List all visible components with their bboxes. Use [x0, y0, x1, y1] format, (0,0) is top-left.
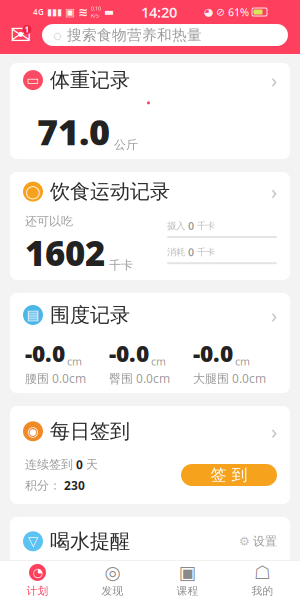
staticText: 千卡 [197, 220, 215, 232]
staticText: 臀围 0.0cm [109, 370, 170, 386]
button[interactable]: ⚙ [239, 534, 277, 549]
staticText: › [271, 302, 277, 328]
staticText: 围度记录 [50, 303, 130, 327]
staticText: 饮食运动记录 [50, 179, 170, 204]
staticText: ✉ [10, 21, 31, 49]
staticText: 4G [33, 7, 44, 17]
staticText: 体重记录 [50, 68, 130, 92]
staticText: ▬ [104, 6, 114, 18]
button[interactable]: ◉ [23, 418, 277, 445]
staticText: 计划 [26, 584, 48, 597]
button[interactable]: ▣ [150, 558, 225, 600]
staticText: › [271, 67, 277, 93]
button[interactable]: ◔ [0, 558, 75, 600]
staticText: 0 [76, 457, 83, 472]
staticText: ▣ [178, 562, 196, 583]
staticText: ▮▮▮ [47, 7, 62, 17]
staticText: 连续签到 [25, 457, 73, 472]
button[interactable]: ☖ [225, 558, 300, 600]
button[interactable]: ◯ [10, 172, 290, 280]
staticText: 还可以吃 [25, 214, 73, 229]
staticText: 积分： [25, 478, 61, 493]
button[interactable]: ◌ [42, 24, 288, 46]
staticText: 消耗 [167, 246, 185, 258]
staticText: ≋ [78, 5, 88, 19]
staticText: 0 [188, 219, 194, 233]
staticText: 发现 [101, 584, 123, 597]
staticText: 喝水提醒 [50, 529, 130, 554]
button[interactable]: 签 到 [181, 464, 277, 486]
staticText: 腰围 0.0cm [25, 370, 86, 386]
staticText: › [271, 178, 277, 205]
staticText: 230 [64, 477, 85, 493]
staticText: ◕ [204, 6, 213, 18]
staticText: 14:20 [141, 2, 177, 22]
staticText: ⊘ [216, 6, 225, 18]
staticText: -0.0 [193, 338, 233, 368]
staticText: -0.0 [25, 338, 65, 368]
staticText: 61% [228, 5, 249, 19]
staticText: 公斤 [114, 137, 138, 152]
staticText: ◯ [25, 184, 40, 199]
staticText: 签 到 [210, 465, 247, 485]
staticText: 天 [86, 457, 98, 472]
staticText: › [271, 418, 277, 445]
staticText: ◉ [27, 424, 39, 439]
staticText: 0 [188, 245, 194, 259]
staticText: cm [151, 354, 166, 368]
staticText: 每日签到 [50, 419, 130, 444]
staticText: ◎ [104, 562, 120, 583]
staticText: 1 [24, 24, 29, 35]
staticText: ▭ [26, 72, 39, 88]
staticText: 摄入 [167, 220, 185, 232]
staticText: 71.0 [37, 107, 110, 155]
staticText: 千卡 [109, 258, 133, 273]
staticText: 搜索食物营养和热量 [67, 26, 202, 44]
staticText: ▤ [26, 307, 39, 322]
staticText: 设置 [253, 534, 277, 549]
staticText: cm [235, 354, 250, 368]
staticText: ☖ [254, 562, 271, 583]
staticText: 0.10 K/S [91, 5, 101, 19]
staticText: ◌ [53, 25, 62, 45]
staticText: ⚙ [239, 534, 250, 548]
staticText: 千卡 [197, 246, 215, 258]
button[interactable]: ▤ [10, 293, 290, 393]
button[interactable]: ▭ [10, 63, 290, 159]
staticText: ◔ [32, 566, 42, 579]
button[interactable]: 消息 [8, 24, 33, 46]
staticText: 大腿围 0.0cm [193, 370, 266, 386]
staticText: -0.0 [109, 338, 149, 368]
staticText: 课程 [176, 584, 198, 597]
staticText: cm [67, 354, 82, 368]
button[interactable]: ◎ [75, 558, 150, 600]
staticText: ▣ [65, 6, 75, 18]
staticText: 1602 [25, 230, 105, 276]
staticText: 我的 [251, 584, 273, 597]
staticText: ▽ [28, 534, 38, 549]
